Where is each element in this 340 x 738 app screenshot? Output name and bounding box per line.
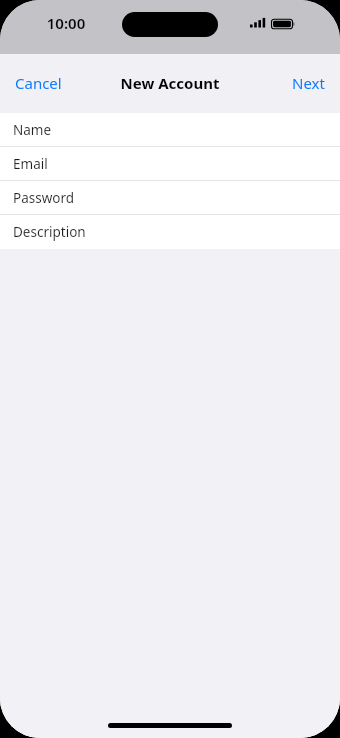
staticText: Password bbox=[13, 189, 75, 207]
staticText: Cancel bbox=[15, 73, 62, 93]
button[interactable]: Description bbox=[0, 215, 340, 249]
staticText: Email bbox=[13, 155, 48, 173]
button[interactable]: Email bbox=[0, 147, 340, 181]
button[interactable]: Name bbox=[0, 113, 340, 147]
staticText: 10:00 bbox=[40, 13, 92, 33]
staticText: New Account bbox=[0, 73, 340, 93]
staticText: Next bbox=[292, 73, 325, 93]
staticText: Name bbox=[13, 121, 52, 139]
button[interactable]: Next bbox=[277, 65, 340, 101]
other: Home indicator bbox=[108, 723, 232, 728]
staticText: Description bbox=[13, 223, 86, 241]
button[interactable]: Password bbox=[0, 181, 340, 215]
button[interactable]: Cancel bbox=[0, 65, 77, 101]
